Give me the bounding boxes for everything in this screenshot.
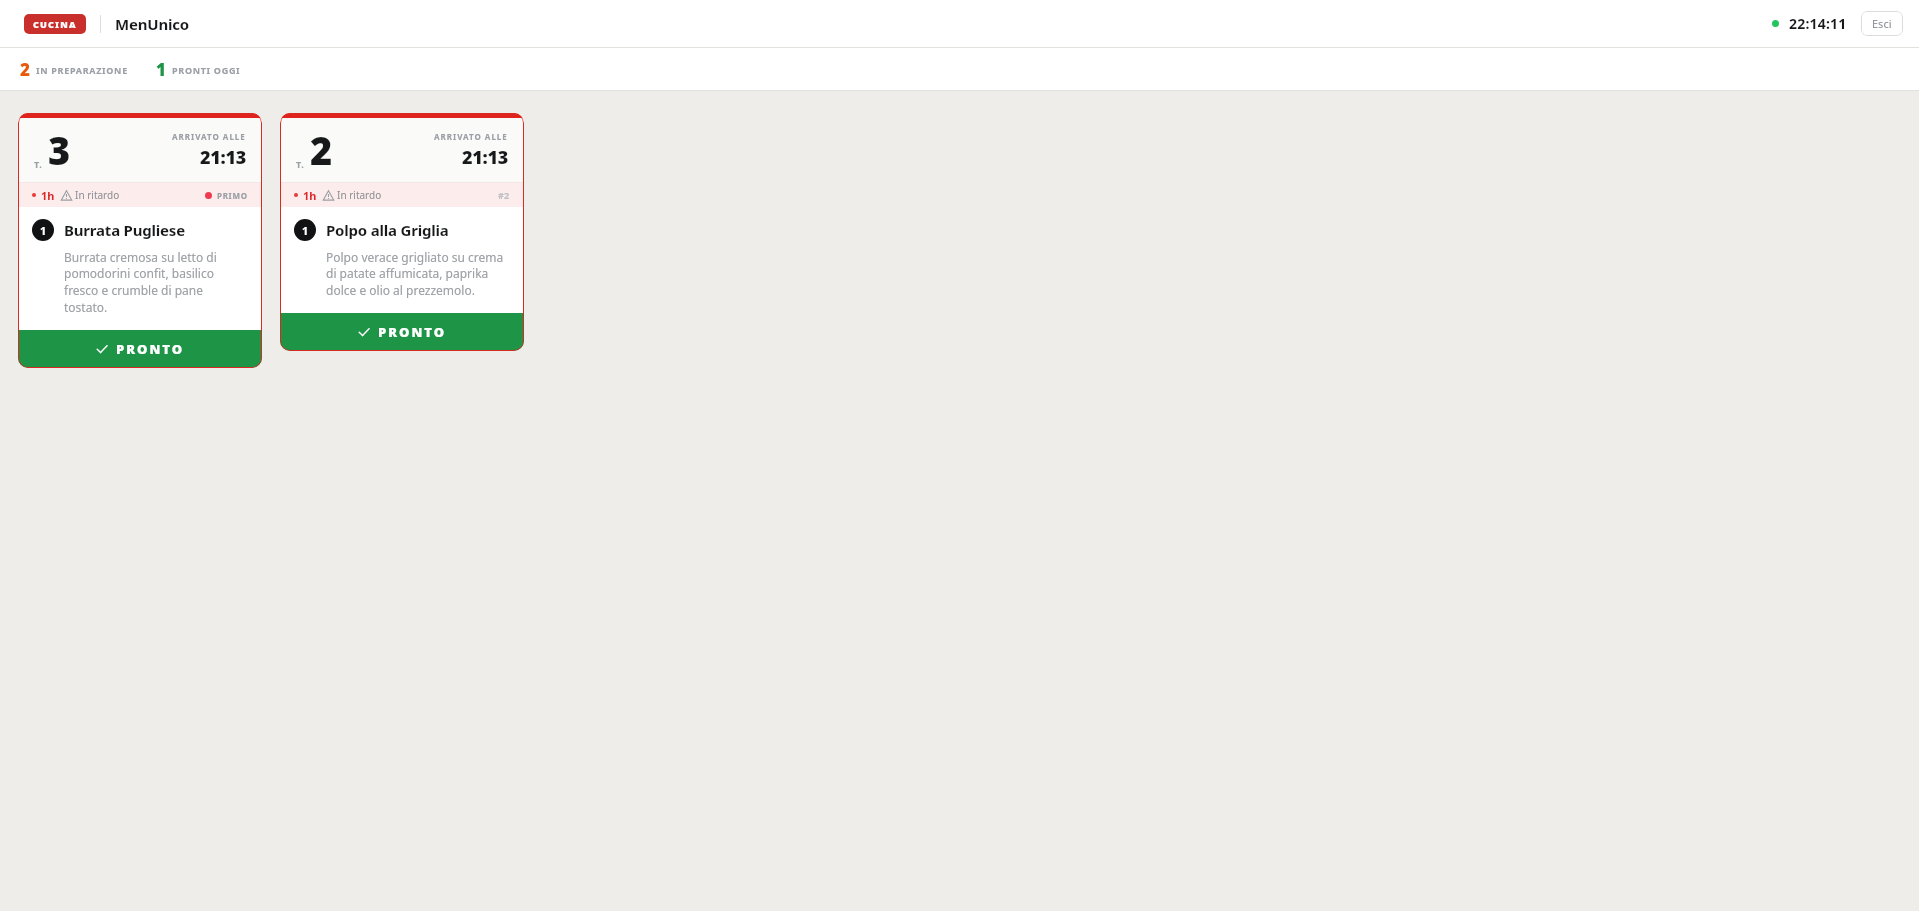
staticText: CUCINA <box>33 18 77 30</box>
staticText: Burrata Pugliese <box>64 220 185 240</box>
staticText: 21:13 <box>200 145 246 170</box>
staticText: IN PREPARAZIONE <box>36 64 128 76</box>
staticText: PRONTO <box>378 323 447 341</box>
button[interactable]: CUCINA <box>24 14 86 34</box>
staticText: #2 <box>498 189 510 201</box>
staticText: PRONTI OGGI <box>172 64 241 76</box>
staticText: ARRIVATO ALLE <box>172 131 246 142</box>
staticText: 3 <box>48 124 70 176</box>
staticText: 21:13 <box>462 145 508 170</box>
staticText: In ritardo <box>337 188 382 202</box>
staticText: 1h <box>303 188 317 203</box>
staticText: PRIMO <box>217 190 248 201</box>
staticText: 2 <box>310 124 332 176</box>
button[interactable]: T. <box>18 113 262 368</box>
staticText: 22:14:11 <box>1789 14 1847 33</box>
button[interactable]: PRONTO <box>18 330 262 368</box>
staticText: PRONTO <box>116 340 185 358</box>
staticText: In ritardo <box>75 188 120 202</box>
button[interactable]: Esci <box>1861 11 1903 36</box>
staticText: 1 <box>156 58 166 81</box>
button[interactable]: PRONTO <box>280 313 524 351</box>
staticText: Polpo alla Griglia <box>326 220 449 240</box>
button[interactable]: T. <box>280 113 524 351</box>
staticText: T. <box>296 158 305 170</box>
staticText: T. <box>34 158 43 170</box>
staticText: Polpo verace grigliato su crema di patat… <box>326 249 510 299</box>
staticText: 1 <box>40 223 47 238</box>
staticText: Burrata cremosa su letto di pomodorini c… <box>64 249 248 316</box>
staticText: 1 <box>302 223 309 238</box>
staticText: MenUnico <box>115 14 189 34</box>
staticText: 2 <box>20 58 30 81</box>
staticText: Esci <box>1872 16 1892 31</box>
staticText: 1h <box>41 188 55 203</box>
staticText: ARRIVATO ALLE <box>434 131 508 142</box>
